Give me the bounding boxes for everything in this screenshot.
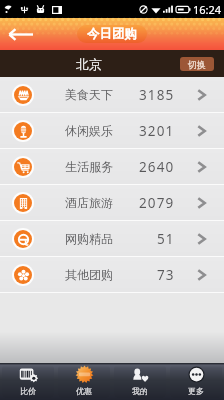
staticText: 北京 bbox=[76, 56, 102, 72]
button[interactable]: 切换 bbox=[180, 57, 214, 71]
button[interactable]: 生活服务 bbox=[0, 149, 224, 185]
staticText: 美食天下 bbox=[65, 87, 113, 102]
button[interactable]: 更多 bbox=[170, 365, 222, 398]
button[interactable]: 美食天下 bbox=[0, 77, 224, 113]
staticText: 3201 bbox=[139, 122, 175, 140]
button[interactable]: 休闲娱乐 bbox=[0, 113, 224, 149]
staticText: 51 bbox=[157, 230, 175, 248]
staticText: 比价 bbox=[20, 386, 36, 396]
button[interactable]: 优惠 bbox=[58, 365, 110, 398]
staticText: 更多 bbox=[188, 386, 204, 396]
staticText: 其他团购 bbox=[65, 267, 113, 282]
button[interactable]: Back bbox=[0, 18, 40, 50]
staticText: 酒店旅游 bbox=[65, 195, 113, 210]
button[interactable]: 比价 bbox=[2, 365, 54, 398]
button[interactable]: 今日团购 bbox=[77, 25, 147, 43]
button[interactable]: 我的 bbox=[114, 365, 166, 398]
staticText: 73 bbox=[157, 266, 175, 284]
button[interactable]: 酒店旅游 bbox=[0, 185, 224, 221]
staticText: 2640 bbox=[139, 158, 175, 176]
staticText: 16:24 bbox=[193, 2, 222, 17]
staticText: 生活服务 bbox=[65, 159, 113, 174]
staticText: 休闲娱乐 bbox=[65, 123, 113, 138]
staticText: 今日团购 bbox=[87, 26, 137, 42]
staticText: 2079 bbox=[139, 194, 175, 212]
staticText: 3185 bbox=[139, 86, 175, 104]
staticText: 优惠 bbox=[76, 386, 92, 396]
button[interactable]: 网购精品 bbox=[0, 221, 224, 257]
staticText: 切换 bbox=[188, 59, 206, 70]
button[interactable]: 其他团购 bbox=[0, 257, 224, 293]
staticText: 我的 bbox=[132, 386, 148, 396]
staticText: 网购精品 bbox=[65, 231, 113, 246]
